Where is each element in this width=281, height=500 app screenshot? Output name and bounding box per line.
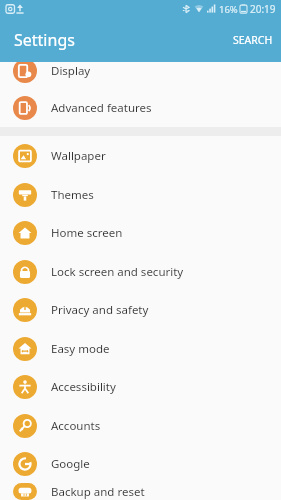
other: Privacy and safety xyxy=(18,303,32,317)
staticText: Accessibility xyxy=(51,379,116,395)
staticText: 20:19 xyxy=(250,2,276,16)
button[interactable]: Google xyxy=(0,445,281,483)
staticText: Backup and reset xyxy=(51,484,145,500)
other: Google xyxy=(18,457,32,471)
other: Advanced features xyxy=(18,101,32,115)
button[interactable]: Advanced features xyxy=(0,89,281,127)
button[interactable]: Easy mode xyxy=(0,329,281,368)
staticText: Home screen xyxy=(51,225,123,241)
button[interactable]: Backup and reset xyxy=(0,483,281,500)
button[interactable]: SEARCH xyxy=(225,25,281,55)
staticText: Wallpaper xyxy=(51,148,106,164)
staticText: Settings xyxy=(14,29,75,51)
staticText: 16% xyxy=(219,3,238,16)
button[interactable]: Display xyxy=(0,52,281,89)
button[interactable]: Wallpaper xyxy=(0,136,281,175)
button[interactable]: Accessibility xyxy=(0,368,281,406)
button[interactable]: Accounts xyxy=(0,406,281,445)
staticText: Lock screen and security xyxy=(51,264,184,280)
button[interactable]: Home screen xyxy=(0,214,281,252)
other: Easy mode xyxy=(18,342,32,356)
staticText: Accounts xyxy=(51,418,101,434)
other: Accessibility xyxy=(18,380,32,394)
staticText: Display xyxy=(51,63,91,79)
staticText: Privacy and safety xyxy=(51,302,149,318)
button[interactable]: Privacy and safety xyxy=(0,291,281,329)
button[interactable]: Themes xyxy=(0,175,281,214)
button[interactable]: Lock screen and security xyxy=(0,252,281,291)
staticText: Easy mode xyxy=(51,341,110,357)
other: Themes xyxy=(18,188,32,202)
other: Backup and reset xyxy=(18,485,32,499)
other: Wallpaper xyxy=(18,149,32,163)
other: Display xyxy=(18,64,32,78)
staticText: SEARCH xyxy=(233,33,273,47)
staticText: Themes xyxy=(51,187,94,203)
staticText: Advanced features xyxy=(51,100,152,116)
staticText: Google xyxy=(51,456,90,472)
other: Lock screen and security xyxy=(18,265,32,279)
other: Home screen xyxy=(18,226,32,240)
other: Accounts xyxy=(18,419,32,433)
